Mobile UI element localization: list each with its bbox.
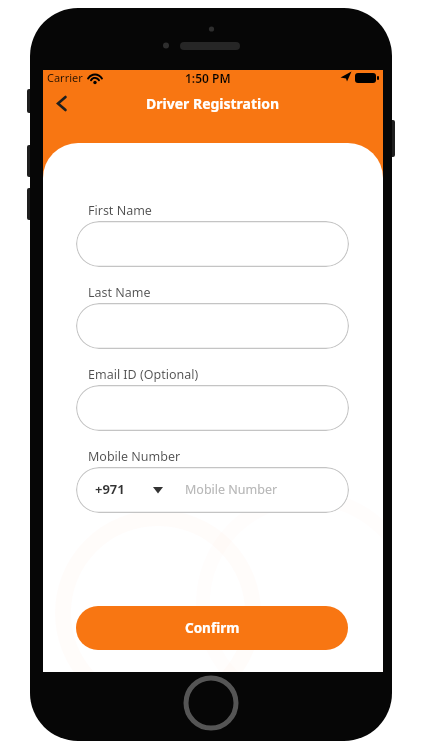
button[interactable] <box>49 88 81 120</box>
button[interactable] <box>76 221 349 267</box>
staticText: Confirm <box>185 619 240 637</box>
staticText: Carrier <box>47 70 83 85</box>
button[interactable] <box>76 467 349 513</box>
staticText: Email ID (Optional) <box>88 366 199 383</box>
button[interactable] <box>76 303 349 349</box>
button[interactable] <box>76 385 349 431</box>
staticText: First Name <box>88 202 152 219</box>
button[interactable]: Confirm <box>76 606 348 650</box>
staticText: Driver Registration <box>146 94 280 113</box>
staticText: Mobile Number <box>185 481 278 498</box>
staticText: Last Name <box>88 284 151 301</box>
staticText: Mobile Number <box>88 448 181 465</box>
staticText: +971 <box>95 480 125 498</box>
staticText: 1:50 PM <box>185 70 231 86</box>
